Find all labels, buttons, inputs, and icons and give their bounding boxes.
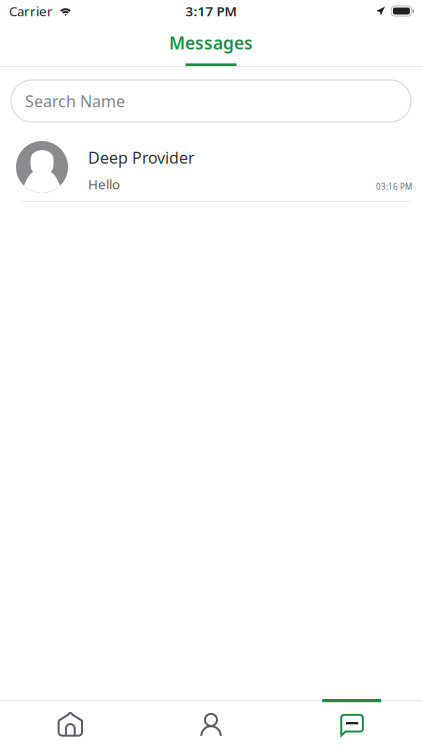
button[interactable]: Messages [281, 699, 422, 750]
staticText: Search Name [25, 90, 125, 112]
staticText: Carrier [9, 2, 53, 20]
button[interactable]: Search Name [11, 80, 411, 122]
staticText: 3:17 PM [185, 2, 236, 20]
button[interactable]: Profile [141, 699, 281, 750]
staticText: Hello [88, 175, 120, 193]
staticText: 03:16 PM [376, 181, 412, 192]
staticText: Deep Provider [88, 147, 195, 168]
button[interactable]: Home [0, 699, 141, 750]
button[interactable]: Deep Provider [0, 133, 422, 202]
staticText: Messages [169, 31, 253, 54]
